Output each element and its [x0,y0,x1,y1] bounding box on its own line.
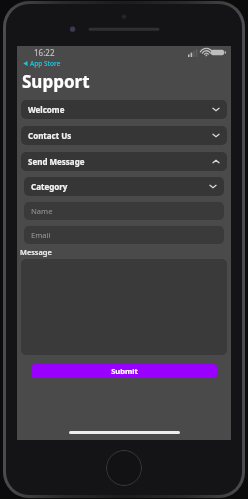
button[interactable]: Welcome [21,100,227,119]
button[interactable]: Submit [31,364,217,378]
button[interactable]: Back to App Store [21,58,231,68]
staticText: Send Message [28,156,85,167]
staticText: Welcome [28,104,65,115]
button[interactable]: Contact Us [21,126,227,145]
button[interactable]: Send Message [21,152,227,171]
staticText: Contact Us [28,130,72,141]
staticText: 16:22 [34,47,55,58]
staticText: Name [31,206,53,216]
staticText: Category [31,181,68,192]
button[interactable]: Email [24,226,224,244]
staticText: Message [20,247,52,257]
button[interactable]: Category [24,177,224,196]
staticText: Support [22,70,90,93]
button[interactable]: Home [106,450,142,486]
staticText: Submit [111,366,138,376]
button[interactable]: Name [24,202,224,220]
staticText: Email [31,230,51,240]
staticText: App Store [30,59,61,68]
